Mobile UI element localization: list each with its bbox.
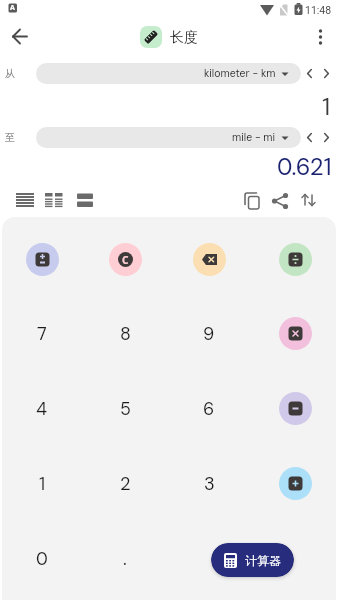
staticText: 8 <box>120 322 131 345</box>
button[interactable] <box>185 235 233 283</box>
button[interactable]: 3 <box>185 459 233 507</box>
button[interactable]: 8 <box>101 309 149 357</box>
button[interactable]: C <box>101 235 149 283</box>
button[interactable] <box>302 127 338 148</box>
button[interactable] <box>271 309 319 357</box>
staticText: mile - mi <box>232 131 276 145</box>
button[interactable]: mile - mi <box>36 127 301 148</box>
button[interactable]: 2 <box>101 459 149 507</box>
staticText: 0.621 <box>277 152 332 178</box>
staticText: 长度 <box>170 29 198 47</box>
staticText: 1 <box>39 472 46 495</box>
button[interactable] <box>271 384 319 432</box>
button[interactable] <box>0 20 44 56</box>
button[interactable]: 6 <box>185 384 233 432</box>
staticText: 6 <box>203 397 215 420</box>
staticText: 2 <box>120 472 131 495</box>
staticText: 至 <box>5 131 15 144</box>
staticText: C <box>122 253 129 267</box>
button[interactable]: kilometer - km <box>36 63 301 84</box>
button[interactable]: 计算器 <box>211 543 294 577</box>
staticText: 7 <box>37 322 47 345</box>
button[interactable]: 9 <box>185 309 233 357</box>
staticText: 计算器 <box>245 553 281 568</box>
button[interactable]: 0 <box>18 534 66 582</box>
button[interactable] <box>271 235 319 283</box>
staticText: 9 <box>203 322 215 345</box>
button[interactable]: 1 <box>18 459 66 507</box>
staticText: 11:48 <box>305 4 332 16</box>
button[interactable] <box>304 20 338 56</box>
staticText: 3 <box>204 472 215 495</box>
button[interactable]: 7 <box>18 309 66 357</box>
staticText: . <box>123 547 127 570</box>
button[interactable] <box>18 235 66 283</box>
staticText: A <box>10 3 15 13</box>
staticText: 1 <box>322 91 331 117</box>
staticText: kilometer - km <box>204 67 276 81</box>
button[interactable] <box>302 63 338 84</box>
button[interactable] <box>271 459 319 507</box>
button[interactable]: . <box>101 534 149 582</box>
staticText: 从 <box>5 67 15 80</box>
button[interactable]: 4 <box>18 384 66 432</box>
staticText: 4 <box>36 397 48 420</box>
button[interactable]: 5 <box>101 384 149 432</box>
staticText: 5 <box>120 397 131 420</box>
staticText: 0 <box>36 547 48 570</box>
